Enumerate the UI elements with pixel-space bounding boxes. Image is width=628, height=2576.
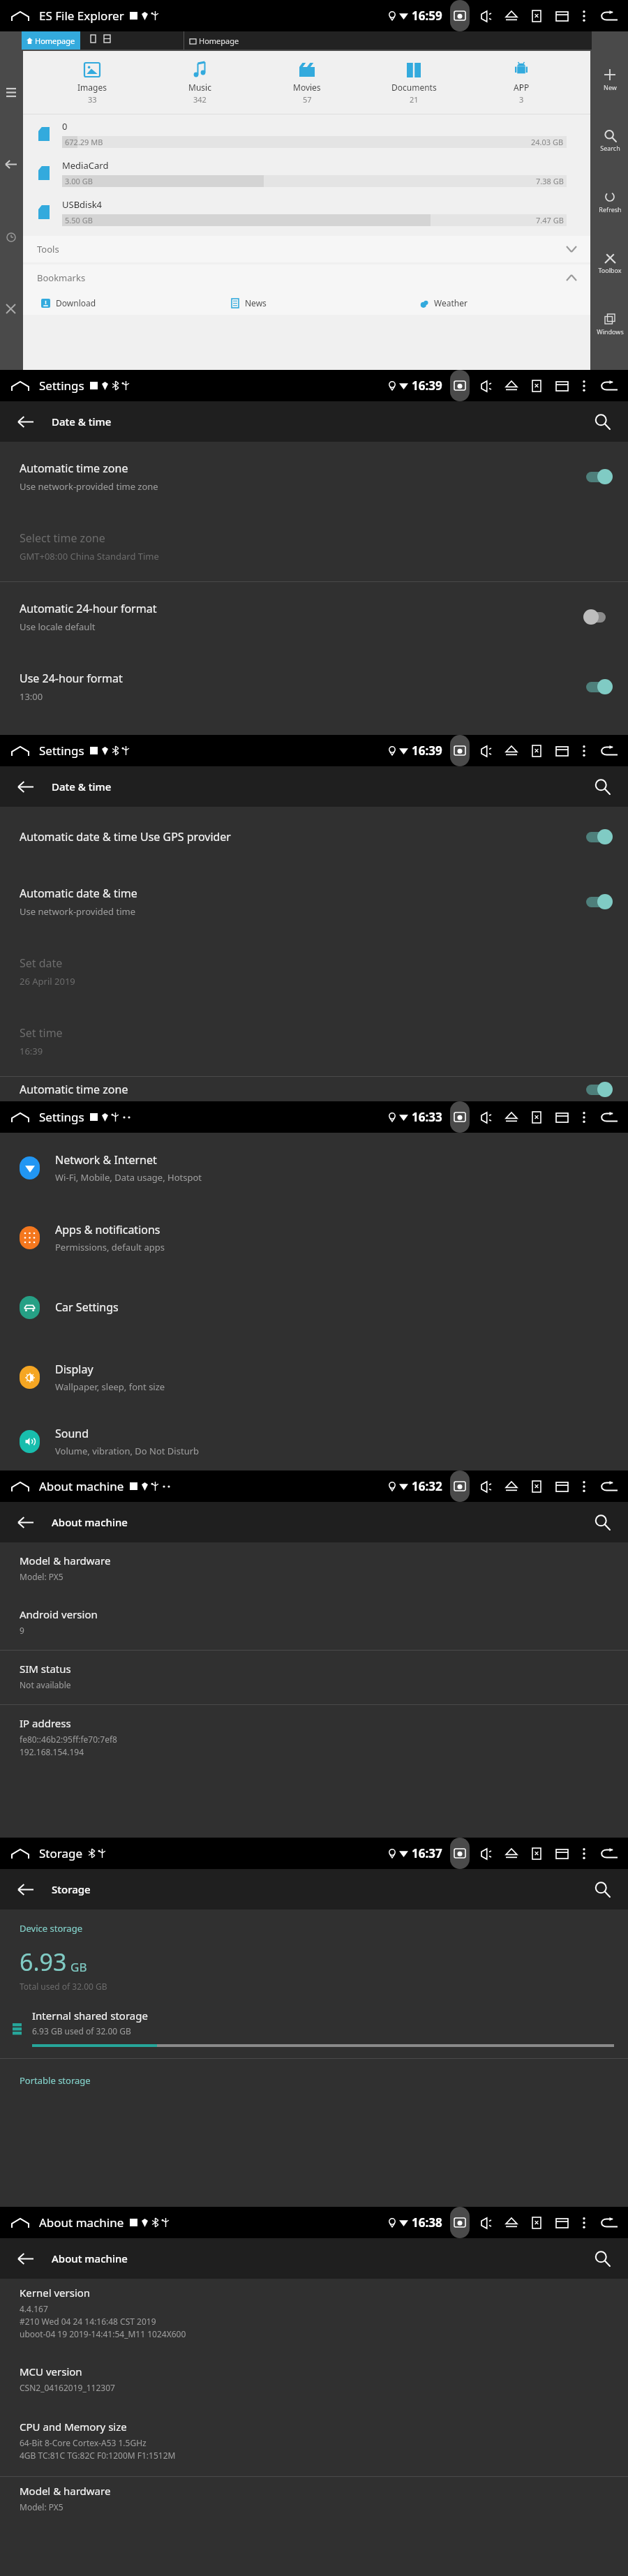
- button[interactable]: Search: [586, 1506, 618, 1538]
- button[interactable]: Back: [596, 3, 622, 29]
- button[interactable]: Select time zone: [0, 512, 628, 581]
- button[interactable]: Recents: [551, 1843, 572, 1864]
- button[interactable]: Navigate up: [10, 770, 42, 803]
- button[interactable]: More options: [576, 2215, 592, 2231]
- button[interactable]: Eject: [501, 6, 522, 27]
- button[interactable]: Screenshot: [448, 1471, 472, 1502]
- button[interactable]: Search: [586, 770, 618, 803]
- button[interactable]: Screenshot: [448, 370, 472, 401]
- button[interactable]: Sound: [0, 1412, 628, 1471]
- button[interactable]: Back: [596, 2210, 622, 2236]
- button[interactable]: Automatic time zone: [0, 1077, 628, 1101]
- button[interactable]: Download: [23, 291, 212, 315]
- button[interactable]: Eject: [501, 740, 522, 761]
- button[interactable]: More options: [576, 378, 592, 394]
- button[interactable]: Toggle: [583, 609, 613, 625]
- button[interactable]: Bookmarks: [23, 265, 590, 291]
- button[interactable]: Back: [596, 373, 622, 399]
- button[interactable]: Screenshot: [448, 1101, 472, 1133]
- button[interactable]: Screenshot: [448, 0, 472, 31]
- button[interactable]: Network: [100, 31, 114, 45]
- button[interactable]: Navigate up: [10, 1506, 42, 1538]
- button[interactable]: Eject: [501, 1476, 522, 1497]
- button[interactable]: MediaCard: [23, 154, 590, 193]
- button[interactable]: Navigate up: [10, 405, 42, 438]
- button[interactable]: History: [0, 226, 22, 248]
- button[interactable]: Apps & notifications: [0, 1203, 628, 1272]
- button[interactable]: Windows: [592, 309, 628, 337]
- button[interactable]: Use 24-hour format: [0, 652, 628, 722]
- button[interactable]: Automatic time zone: [0, 442, 628, 512]
- button[interactable]: Model & hardware: [0, 2477, 628, 2521]
- button[interactable]: Volume: [476, 6, 497, 27]
- button[interactable]: Search: [586, 405, 618, 438]
- button[interactable]: Automatic 24-hour format: [0, 582, 628, 652]
- button[interactable]: Recents: [551, 740, 572, 761]
- button[interactable]: APP: [483, 61, 560, 105]
- button[interactable]: Menu: [0, 82, 22, 103]
- button[interactable]: Close app: [526, 1107, 547, 1128]
- button[interactable]: Volume: [476, 740, 497, 761]
- button[interactable]: Set date: [0, 937, 628, 1006]
- button[interactable]: Volume: [476, 2212, 497, 2233]
- button[interactable]: Car Settings: [0, 1272, 628, 1342]
- button[interactable]: Kernel version: [0, 2279, 628, 2348]
- button[interactable]: Movies: [269, 61, 345, 105]
- button[interactable]: Tools: [23, 236, 590, 262]
- button[interactable]: Home: [6, 736, 35, 766]
- button[interactable]: Weather: [401, 291, 590, 315]
- button[interactable]: CPU and Memory size: [0, 2413, 628, 2469]
- button[interactable]: Home: [6, 1839, 35, 1868]
- button[interactable]: Recents: [551, 1476, 572, 1497]
- button[interactable]: Navigate up: [10, 2242, 42, 2275]
- button[interactable]: Close app: [526, 6, 547, 27]
- button[interactable]: Android version: [0, 1596, 628, 1650]
- button[interactable]: More options: [576, 743, 592, 759]
- button[interactable]: Screenshot: [448, 735, 472, 766]
- button[interactable]: IP address: [0, 1705, 628, 1771]
- button[interactable]: Close app: [526, 2212, 547, 2233]
- button[interactable]: Home: [6, 1472, 35, 1501]
- button[interactable]: More options: [576, 1846, 592, 1861]
- button[interactable]: Refresh: [592, 187, 628, 215]
- button[interactable]: Close app: [526, 1476, 547, 1497]
- button[interactable]: Automatic date & time: [0, 867, 628, 937]
- button[interactable]: More options: [576, 8, 592, 24]
- button[interactable]: Eject: [501, 1107, 522, 1128]
- button[interactable]: More options: [576, 1479, 592, 1494]
- button[interactable]: Toolbox: [592, 248, 628, 276]
- button[interactable]: Home: [6, 2208, 35, 2238]
- button[interactable]: Toggle: [583, 1082, 613, 1097]
- button[interactable]: Model & hardware: [0, 1542, 628, 1596]
- button[interactable]: USBdisk4: [23, 193, 590, 232]
- button[interactable]: Network & Internet: [0, 1133, 628, 1203]
- button[interactable]: Volume: [476, 1843, 497, 1864]
- button[interactable]: Eject: [501, 375, 522, 396]
- button[interactable]: More options: [576, 1110, 592, 1125]
- button[interactable]: Back: [596, 738, 622, 764]
- button[interactable]: Back: [596, 1840, 622, 1867]
- button[interactable]: Toggle: [583, 829, 613, 844]
- button[interactable]: Search: [586, 1873, 618, 1905]
- button[interactable]: New: [592, 65, 628, 93]
- button[interactable]: Close: [0, 298, 22, 320]
- button[interactable]: Close app: [526, 1843, 547, 1864]
- button[interactable]: Back: [0, 154, 22, 175]
- button[interactable]: Images: [54, 61, 130, 105]
- button[interactable]: Search: [586, 2242, 618, 2275]
- button[interactable]: Home: [6, 371, 35, 401]
- button[interactable]: Recents: [551, 1107, 572, 1128]
- button[interactable]: Homepage: [27, 31, 75, 50]
- button[interactable]: 0: [23, 114, 590, 154]
- button[interactable]: Toggle: [583, 679, 613, 694]
- button[interactable]: Documents: [375, 61, 452, 105]
- button[interactable]: Back: [596, 1104, 622, 1131]
- button[interactable]: Volume: [476, 1476, 497, 1497]
- button[interactable]: Homepage: [190, 31, 239, 50]
- button[interactable]: Eject: [501, 2212, 522, 2233]
- button[interactable]: Home: [6, 1103, 35, 1132]
- button[interactable]: Close app: [526, 375, 547, 396]
- button[interactable]: Volume: [476, 375, 497, 396]
- button[interactable]: Toggle: [583, 894, 613, 909]
